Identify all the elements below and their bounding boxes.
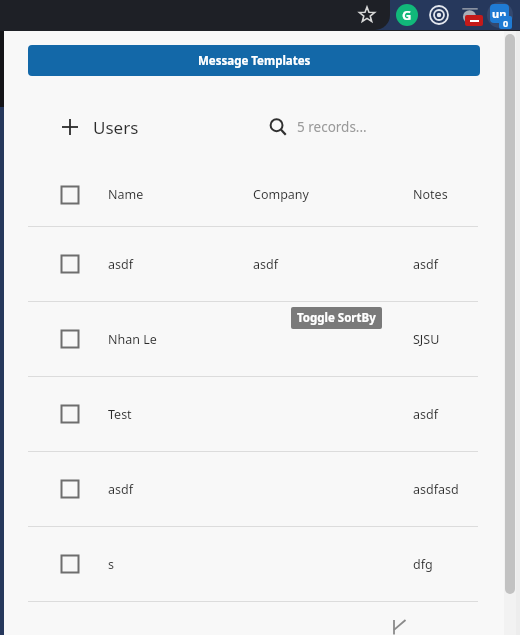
button[interactable]: Select row bbox=[4, 377, 504, 451]
button[interactable]: Add user bbox=[58, 115, 82, 139]
button[interactable]: Select row bbox=[4, 527, 504, 601]
button[interactable]: Select row bbox=[57, 326, 83, 352]
button[interactable]: Extension two bbox=[459, 4, 481, 26]
button[interactable]: Select row bbox=[4, 302, 504, 376]
staticText: asdf bbox=[413, 406, 438, 423]
button[interactable]: Grammarly bbox=[396, 4, 418, 26]
staticText: asdf bbox=[253, 256, 278, 273]
staticText: Company bbox=[253, 186, 309, 203]
button[interactable]: Select row bbox=[57, 251, 83, 277]
staticText: 0 bbox=[503, 17, 509, 29]
staticText: asdf bbox=[108, 256, 133, 273]
staticText: Notes bbox=[413, 186, 448, 203]
staticText: G bbox=[402, 6, 412, 24]
staticText: asdf bbox=[413, 256, 438, 273]
button[interactable]: Message Templates bbox=[28, 45, 480, 76]
button[interactable]: Extension bbox=[428, 4, 450, 26]
staticText: Nhan Le bbox=[108, 331, 157, 348]
staticText: un bbox=[492, 6, 507, 21]
button[interactable]: Select row bbox=[57, 551, 83, 577]
staticText: asdf bbox=[108, 481, 133, 498]
button[interactable]: Bookmark bbox=[357, 5, 377, 25]
staticText: Users bbox=[93, 116, 139, 139]
staticText: s bbox=[108, 556, 114, 573]
other: Search bbox=[267, 116, 289, 138]
staticText: Message Templates bbox=[198, 53, 311, 69]
button[interactable]: Search bbox=[267, 110, 367, 144]
button[interactable]: Collapse bbox=[392, 620, 410, 635]
staticText: 5 records... bbox=[297, 118, 367, 136]
staticText: asdfasd bbox=[413, 481, 459, 498]
staticText: Test bbox=[108, 406, 132, 423]
staticText: Name bbox=[108, 186, 144, 203]
button[interactable]: Select row bbox=[4, 452, 504, 526]
button[interactable]: Select all bbox=[4, 163, 504, 226]
button[interactable]: Select row bbox=[4, 227, 504, 301]
button[interactable]: Select row bbox=[57, 476, 83, 502]
staticText: dfg bbox=[413, 556, 433, 573]
button[interactable]: Select all bbox=[57, 182, 83, 208]
button[interactable]: Profile bbox=[487, 2, 513, 28]
staticText: SJSU bbox=[413, 331, 440, 348]
button[interactable]: Select row bbox=[57, 401, 83, 427]
staticText: Toggle SortBy bbox=[297, 310, 376, 326]
